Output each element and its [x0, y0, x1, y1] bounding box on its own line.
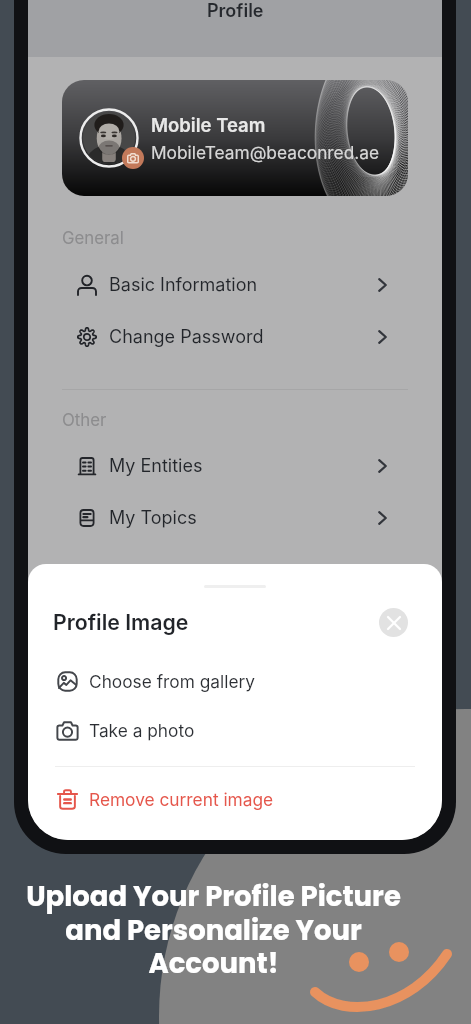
button[interactable]: Basic Information	[28, 259, 442, 311]
button[interactable]: Close	[379, 608, 408, 637]
button[interactable]: Remove current image	[28, 775, 442, 824]
staticText: Upload Your Profile Picture and Personal…	[26, 877, 401, 982]
staticText: Choose from gallery	[89, 671, 255, 692]
button[interactable]: Choose from gallery	[28, 657, 442, 706]
staticText: Change Password	[109, 326, 264, 348]
staticText: Mobile Team	[151, 114, 266, 136]
staticText: My Topics	[109, 507, 197, 529]
button[interactable]: Change Password	[28, 311, 442, 363]
button[interactable]: Change photo	[122, 147, 144, 169]
button[interactable]: My Entities	[28, 440, 442, 492]
staticText: My Entities	[109, 455, 203, 477]
button[interactable]: Change photo	[62, 80, 408, 196]
staticText: General	[62, 228, 124, 248]
staticText: Other	[62, 410, 107, 430]
button[interactable]: Take a photo	[28, 706, 442, 755]
staticText: MobileTeam@beaconred.ae	[151, 142, 380, 163]
staticText: Remove current image	[89, 789, 274, 810]
staticText: Profile Image	[53, 609, 189, 635]
button[interactable]: My Topics	[28, 492, 442, 544]
staticText: Basic Information	[109, 274, 258, 296]
staticText: Profile	[207, 0, 264, 22]
staticText: Take a photo	[89, 720, 195, 741]
